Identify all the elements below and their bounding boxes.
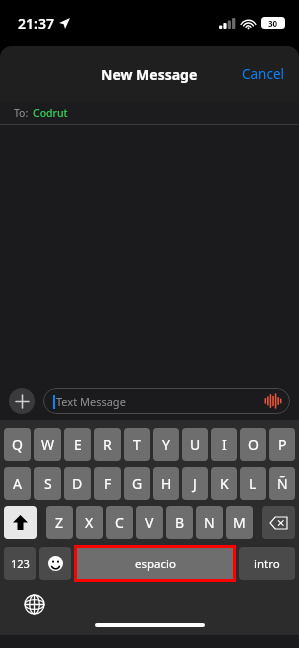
button[interactable]: Emoji — [39, 547, 71, 580]
button[interactable]: Backspace — [262, 506, 295, 539]
staticText: P — [278, 435, 287, 454]
staticText: Z — [55, 513, 64, 532]
button[interactable]: J — [182, 467, 208, 500]
staticText: B — [175, 513, 185, 532]
staticText: C — [115, 513, 124, 532]
button[interactable]: A — [4, 467, 31, 500]
button[interactable]: B — [166, 506, 193, 539]
button[interactable]: H — [153, 467, 179, 500]
button[interactable]: espacio — [77, 548, 233, 579]
button[interactable]: 123 — [4, 547, 36, 580]
staticText: M — [233, 513, 246, 532]
staticText: New Message — [101, 65, 198, 84]
staticText: Y — [162, 435, 170, 454]
staticText: K — [220, 474, 229, 493]
staticText: O — [248, 435, 259, 454]
staticText: F — [104, 474, 112, 493]
staticText: X — [85, 513, 94, 532]
button[interactable]: D — [64, 467, 91, 500]
staticText: 30 — [268, 18, 278, 29]
button[interactable]: O — [240, 428, 266, 461]
staticText: D — [72, 474, 83, 493]
button[interactable]: N — [196, 506, 223, 539]
button[interactable]: C — [106, 506, 133, 539]
button[interactable]: U — [182, 428, 208, 461]
staticText: L — [249, 474, 257, 493]
button[interactable]: L — [240, 467, 266, 500]
staticText: H — [161, 474, 172, 493]
button[interactable]: Shift — [4, 506, 37, 539]
staticText: 123 — [11, 556, 30, 571]
button[interactable]: G — [124, 467, 150, 500]
staticText: E — [74, 435, 82, 454]
staticText: Text Message — [56, 394, 126, 409]
button[interactable]: Text Message — [43, 388, 290, 414]
button[interactable]: Z — [46, 506, 73, 539]
staticText: U — [190, 435, 201, 454]
button[interactable]: M — [226, 506, 253, 539]
staticText: To: — [14, 106, 29, 120]
staticText: 21:37 — [18, 14, 54, 33]
button[interactable]: V — [136, 506, 163, 539]
button[interactable]: W — [34, 428, 61, 461]
button[interactable]: R — [94, 428, 121, 461]
staticText: espacio — [135, 556, 176, 572]
button[interactable]: Audio message — [264, 394, 282, 408]
button[interactable]: K — [211, 467, 237, 500]
staticText: Cancel — [242, 65, 285, 83]
button[interactable]: E — [64, 428, 91, 461]
button[interactable]: Add attachment — [9, 388, 35, 414]
staticText: I — [222, 435, 227, 454]
staticText: Q — [12, 435, 23, 454]
staticText: S — [44, 474, 52, 493]
button[interactable]: Q — [4, 428, 31, 461]
staticText: T — [133, 435, 141, 454]
staticText: J — [193, 474, 197, 493]
button[interactable]: F — [94, 467, 121, 500]
staticText: R — [103, 435, 112, 454]
button[interactable]: I — [211, 428, 237, 461]
button[interactable]: P — [269, 428, 295, 461]
button[interactable]: To: — [0, 102, 299, 124]
button[interactable]: T — [124, 428, 150, 461]
staticText: N — [204, 513, 215, 532]
staticText: G — [132, 474, 143, 493]
staticText: Ñ — [277, 474, 288, 493]
button[interactable]: intro — [239, 547, 295, 580]
staticText: Codrut — [33, 106, 68, 120]
button[interactable]: S — [34, 467, 61, 500]
button[interactable]: Change keyboard language — [21, 591, 47, 617]
staticText: A — [13, 474, 22, 493]
staticText: W — [41, 435, 55, 454]
button[interactable]: Ñ — [269, 467, 295, 500]
button[interactable]: X — [76, 506, 103, 539]
button[interactable]: Cancel — [228, 55, 299, 93]
staticText: V — [145, 513, 154, 532]
button[interactable]: Y — [153, 428, 179, 461]
staticText: intro — [254, 556, 280, 572]
